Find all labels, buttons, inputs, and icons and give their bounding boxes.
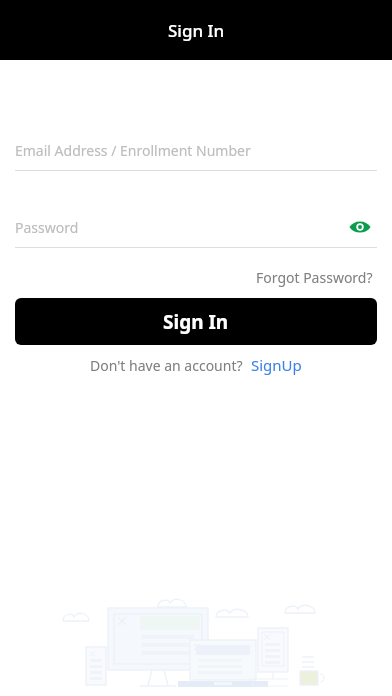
staticText: SignUp: [251, 355, 302, 375]
staticText: Sign In: [168, 19, 225, 42]
button[interactable]: Password: [15, 207, 377, 247]
staticText: Forgot Password?: [256, 268, 373, 287]
button[interactable]: Forgot Password?: [252, 264, 377, 291]
staticText: Password: [15, 218, 79, 237]
button[interactable]: Email Address / Enrollment Number: [15, 130, 377, 170]
staticText: Don't have an account?: [90, 356, 243, 375]
staticText: Sign In: [163, 309, 229, 335]
button[interactable]: SignUp: [251, 355, 302, 375]
button[interactable]: Sign In: [15, 298, 377, 345]
button[interactable]: Show password: [343, 210, 377, 244]
staticText: Email Address / Enrollment Number: [15, 141, 251, 160]
